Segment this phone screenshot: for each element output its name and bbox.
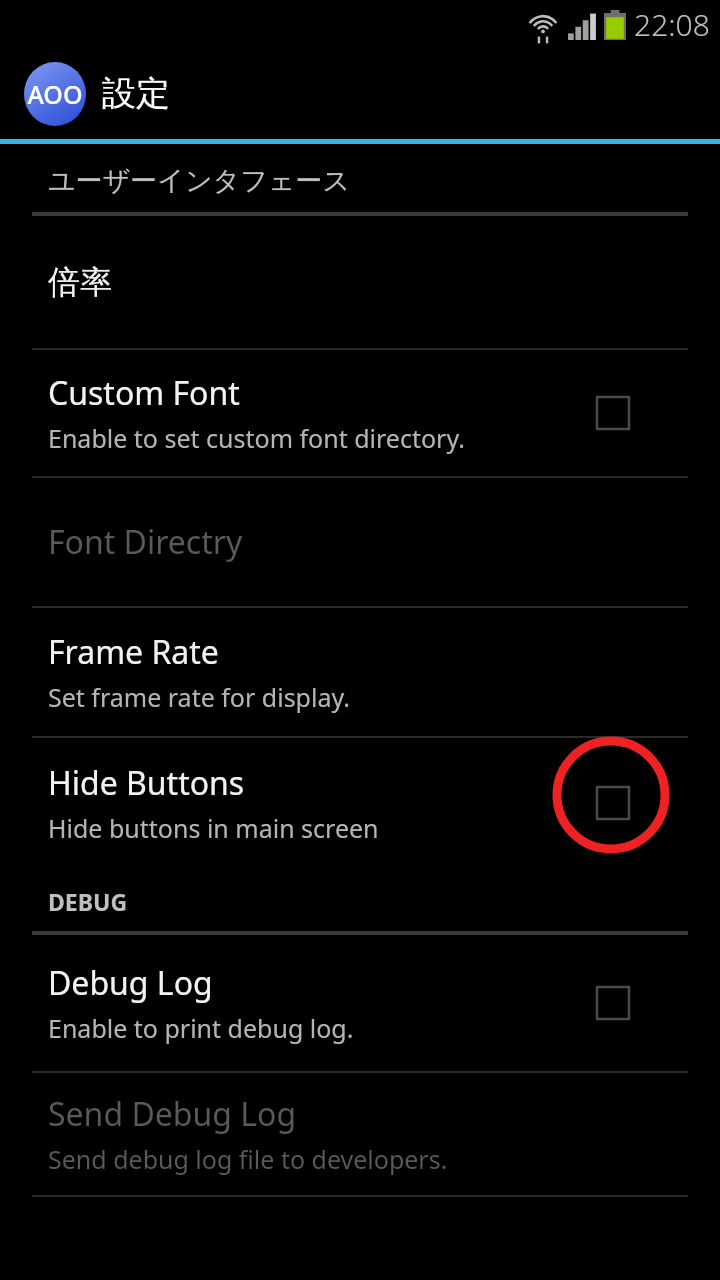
staticText: Enable to print debug log. — [48, 1011, 354, 1045]
staticText: Hide buttons in main screen — [48, 811, 379, 845]
staticText: Hide Buttons — [48, 761, 245, 805]
staticText: Send Debug Log — [48, 1092, 297, 1136]
button[interactable]: Custom Font — [0, 350, 720, 476]
staticText: Custom Font — [48, 371, 240, 415]
staticText: 倍率 — [48, 262, 112, 302]
staticText: Debug Log — [48, 961, 213, 1005]
staticText: Set frame rate for display. — [48, 680, 350, 714]
button[interactable]: Custom Font checkbox — [583, 383, 643, 443]
button[interactable]: Send Debug Log — [0, 1073, 720, 1195]
button[interactable]: Debug Log checkbox — [583, 973, 643, 1033]
button[interactable]: AOO — [0, 48, 720, 139]
staticText: 設定 — [102, 72, 170, 115]
staticText: 22:08 — [634, 4, 710, 45]
button[interactable]: Font Directry — [0, 478, 720, 606]
button[interactable]: Hide Buttons checkbox — [583, 773, 643, 833]
staticText: AOO — [27, 77, 83, 111]
staticText: Enable to set custom font directory. — [48, 421, 465, 455]
button[interactable]: Debug Log — [0, 935, 720, 1071]
staticText: ユーザーインタフェース — [48, 164, 351, 198]
button[interactable]: 倍率 — [0, 216, 720, 348]
staticText: Frame Rate — [48, 630, 219, 674]
staticText: Send debug log file to developers. — [48, 1142, 448, 1176]
staticText: Font Directry — [48, 520, 243, 564]
staticText: DEBUG — [48, 886, 128, 917]
button[interactable]: Hide Buttons — [0, 738, 720, 868]
button[interactable]: Frame Rate — [0, 608, 720, 736]
